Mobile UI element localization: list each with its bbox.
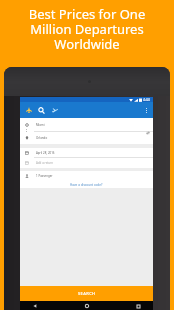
button[interactable]: Orlando	[20, 132, 153, 144]
button[interactable]: 1 Passenger	[20, 171, 153, 181]
button[interactable]: Have a discount code?	[20, 181, 153, 188]
button[interactable]: Search	[35, 102, 48, 118]
staticText: 4:44	[143, 97, 150, 102]
button[interactable]: Back	[30, 301, 40, 310]
staticText: Have a discount code?	[70, 183, 103, 187]
button[interactable]: SEARCH	[20, 286, 153, 301]
staticText: SEARCH	[78, 291, 96, 296]
button[interactable]: April 28, 2016	[20, 148, 153, 158]
staticText: Add a return	[36, 161, 54, 165]
button[interactable]: Miami	[20, 118, 153, 132]
staticText: Miami	[36, 123, 45, 127]
button[interactable]: Deals	[48, 102, 61, 118]
button[interactable]: Home	[82, 301, 92, 310]
button[interactable]: Add a return	[20, 158, 153, 168]
button[interactable]: Flights	[22, 102, 35, 118]
button[interactable]: More options	[140, 104, 153, 117]
button[interactable]: Swap origin and destination	[144, 129, 151, 136]
staticText: April 28, 2016	[36, 151, 55, 155]
staticText: Orlando	[36, 136, 48, 140]
staticText: Best Prices for One Million Departures W…	[0, 5, 174, 53]
button[interactable]: Recents	[133, 301, 143, 310]
staticText: 1 Passenger	[36, 174, 53, 178]
